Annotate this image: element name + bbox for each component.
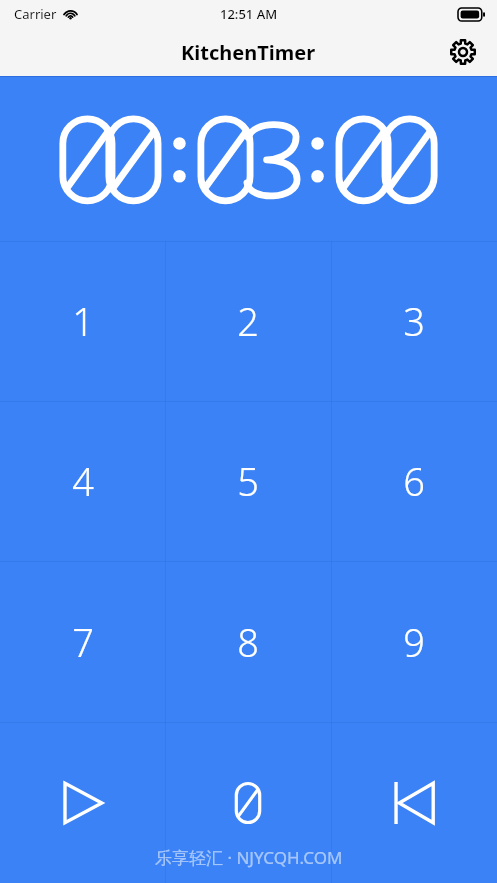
staticText: 1	[72, 295, 94, 347]
button[interactable]: 6	[331, 401, 497, 561]
button[interactable]: Settings	[443, 32, 483, 72]
staticText: 乐享轻汇 · NJYCQH.COM	[155, 846, 343, 869]
staticText: 8	[237, 616, 259, 668]
staticText: 2	[237, 295, 259, 347]
button[interactable]: 5	[165, 401, 331, 561]
staticText: 12:51 AM	[220, 5, 278, 23]
staticText: 5	[237, 455, 259, 507]
staticText: 9	[403, 616, 425, 668]
button[interactable]: 4	[0, 401, 165, 561]
button[interactable]	[165, 722, 331, 883]
button[interactable]: 9	[331, 561, 497, 722]
button[interactable]: 8	[165, 561, 331, 722]
button[interactable]: 3	[331, 241, 497, 401]
button[interactable]: Reset	[331, 722, 497, 883]
staticText: Carrier	[14, 5, 57, 23]
staticText: 7	[72, 616, 94, 668]
staticText: 6	[403, 455, 425, 507]
button[interactable]: Start	[0, 722, 165, 883]
staticText: 4	[72, 455, 94, 507]
staticText: KitchenTimer	[181, 39, 316, 66]
button[interactable]: 2	[165, 241, 331, 401]
staticText: 3	[403, 295, 425, 347]
button[interactable]: 1	[0, 241, 165, 401]
button[interactable]: 7	[0, 561, 165, 722]
